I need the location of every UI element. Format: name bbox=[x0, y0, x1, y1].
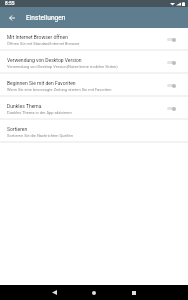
staticText: Verwendung von Desktop Version(Nutze kei… bbox=[7, 64, 118, 69]
button[interactable]: Beginnen Sie mit den Favoriten bbox=[0, 74, 188, 97]
button[interactable]: Back bbox=[44, 285, 64, 300]
staticText: 8:55 bbox=[5, 1, 15, 7]
staticText: Dunkles Thema in der App aktivieren bbox=[7, 110, 72, 115]
staticText: Mit Internet Browser öffnen bbox=[7, 34, 68, 40]
button[interactable]: Dunkles Thema bbox=[0, 97, 188, 120]
button[interactable]: Mit Internet Browser öffnen bbox=[167, 34, 176, 45]
button[interactable]: Verwendung von Desktop Version bbox=[167, 57, 176, 68]
staticText: Sortieren bbox=[7, 126, 28, 132]
button[interactable]: Dunkles Thema bbox=[167, 103, 176, 114]
staticText: Öffnen Sie mit Standard Internet Browser bbox=[7, 41, 80, 46]
button[interactable]: Home bbox=[84, 285, 104, 300]
staticText: Wenn Sie eine bevorzugte Zeitung starten… bbox=[7, 87, 112, 92]
button[interactable]: Verwendung von Desktop Version bbox=[0, 51, 188, 74]
button[interactable]: Recent apps bbox=[124, 285, 144, 300]
button[interactable]: Beginnen Sie mit den Favoriten bbox=[167, 80, 176, 91]
button[interactable]: Mit Internet Browser öffnen bbox=[0, 28, 188, 51]
button[interactable]: Back bbox=[4, 10, 19, 25]
staticText: Dunkles Thema bbox=[7, 103, 42, 109]
staticText: Einstellungen bbox=[26, 14, 66, 22]
staticText: Verwendung von Desktop Version bbox=[7, 57, 82, 63]
button[interactable]: Sortieren bbox=[0, 120, 188, 143]
staticText: Sortieren Sie die Nachrichten Quellen bbox=[7, 133, 73, 138]
staticText: Beginnen Sie mit den Favoriten bbox=[7, 80, 76, 86]
